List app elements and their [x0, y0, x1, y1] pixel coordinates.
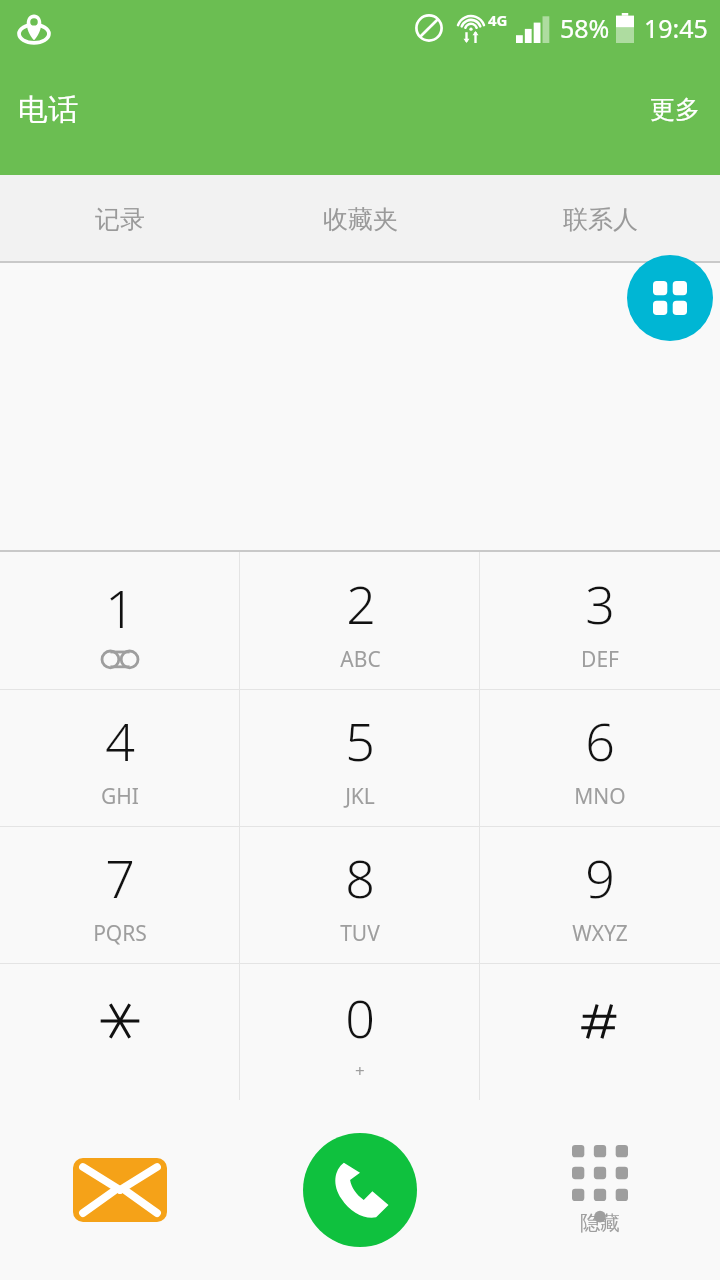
button[interactable]: 6 — [480, 690, 720, 826]
staticText: 更多 — [650, 94, 700, 125]
button[interactable]: 5 — [240, 690, 480, 826]
staticText: 7 — [105, 842, 135, 913]
button[interactable]: Dialpad options — [627, 255, 713, 341]
button[interactable]: 更多 — [630, 84, 720, 135]
staticText: MNO — [574, 782, 626, 811]
button[interactable]: Message — [0, 1100, 240, 1280]
button[interactable]: 联系人 — [480, 175, 720, 263]
staticText: 9 — [585, 842, 615, 913]
button[interactable]: 隐藏 — [480, 1100, 720, 1280]
button[interactable]: 3 — [480, 552, 720, 689]
button[interactable]: 0 — [240, 964, 480, 1100]
button[interactable]: 9 — [480, 827, 720, 963]
staticText: 19:45 — [644, 11, 708, 45]
staticText: GHI — [101, 782, 139, 811]
staticText: 0 — [345, 982, 375, 1053]
button[interactable] — [480, 964, 720, 1100]
staticText: PQRS — [93, 919, 147, 948]
staticText: 6 — [585, 705, 615, 776]
staticText: 收藏夹 — [323, 204, 398, 235]
button[interactable]: 记录 — [0, 175, 240, 263]
staticText: 58% — [560, 11, 610, 45]
button[interactable] — [0, 964, 240, 1100]
staticText: 隐藏 — [580, 1211, 620, 1236]
staticText: 3 — [585, 568, 615, 639]
staticText: ABC — [340, 645, 381, 674]
staticText: 1 — [105, 572, 135, 643]
staticText: 8 — [345, 842, 375, 913]
button[interactable]: 收藏夹 — [240, 175, 480, 263]
button[interactable]: Call — [240, 1100, 480, 1280]
button[interactable]: 4 — [0, 690, 240, 826]
button[interactable]: 1 — [0, 552, 240, 689]
staticText: 5 — [345, 705, 375, 776]
staticText: TUV — [340, 919, 380, 948]
staticText: 4 — [105, 705, 135, 776]
staticText: 记录 — [95, 204, 145, 235]
button[interactable]: 7 — [0, 827, 240, 963]
button[interactable]: 8 — [240, 827, 480, 963]
staticText: WXYZ — [572, 919, 628, 948]
staticText: DEF — [581, 645, 619, 674]
button[interactable]: 2 — [240, 552, 480, 689]
staticText: 联系人 — [563, 204, 638, 235]
staticText: 电话 — [18, 91, 78, 129]
staticText: JKL — [345, 782, 375, 811]
staticText: 2 — [346, 568, 376, 639]
staticText: 4G — [488, 10, 508, 30]
staticText: + — [355, 1059, 365, 1082]
